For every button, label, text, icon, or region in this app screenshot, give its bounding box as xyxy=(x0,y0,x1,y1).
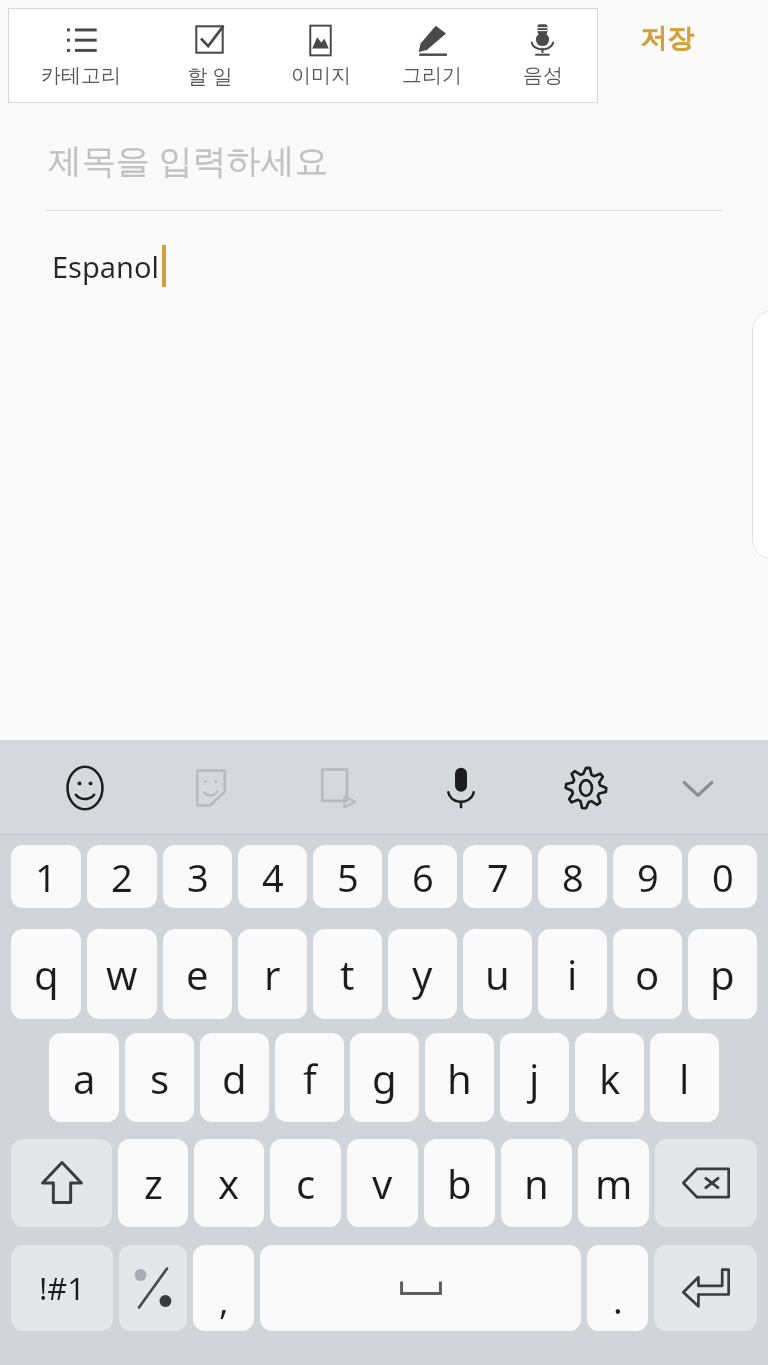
staticText: y xyxy=(412,947,433,1001)
staticText: r xyxy=(264,947,281,1001)
button[interactable]: 6 xyxy=(388,845,457,908)
staticText: 할 일 xyxy=(187,62,233,89)
button[interactable]: o xyxy=(613,929,682,1019)
staticText: h xyxy=(447,1051,472,1105)
staticText: l xyxy=(679,1051,690,1105)
staticText: 5 xyxy=(337,851,359,903)
staticText: 이미지 xyxy=(291,63,351,88)
staticText: z xyxy=(144,1156,163,1210)
button[interactable]: t xyxy=(313,929,382,1019)
button[interactable]: 저장 xyxy=(626,12,708,66)
staticText: o xyxy=(635,947,660,1001)
button[interactable]: g xyxy=(350,1033,419,1122)
button[interactable]: 할 일 xyxy=(154,8,265,103)
staticText: 그리기 xyxy=(402,63,462,88)
staticText: . xyxy=(613,1276,623,1325)
staticText: 7 xyxy=(487,851,509,903)
button[interactable]: Korean English toggle xyxy=(119,1245,187,1331)
staticText: , xyxy=(219,1276,229,1325)
staticText: m xyxy=(595,1156,633,1210)
staticText: g xyxy=(372,1051,397,1105)
staticText: 제목을 입력하세요 xyxy=(48,137,329,183)
button[interactable]: 7 xyxy=(463,845,532,908)
button[interactable]: h xyxy=(425,1033,494,1122)
button[interactable]: l xyxy=(650,1033,719,1122)
button[interactable]: j xyxy=(500,1033,569,1122)
staticText: b xyxy=(447,1156,472,1210)
button[interactable]: d xyxy=(200,1033,269,1122)
button[interactable]: f xyxy=(275,1033,344,1122)
button[interactable]: . xyxy=(587,1245,648,1331)
staticText: 3 xyxy=(187,851,209,903)
staticText: x xyxy=(218,1156,240,1210)
staticText: e xyxy=(186,947,209,1001)
button[interactable]: Backspace xyxy=(655,1139,757,1227)
button[interactable]: 0 xyxy=(688,845,757,908)
button[interactable]: r xyxy=(238,929,307,1019)
staticText: !#1 xyxy=(39,1267,86,1309)
button[interactable]: 카테고리 xyxy=(8,8,154,103)
button[interactable]: i xyxy=(538,929,607,1019)
staticText: 9 xyxy=(637,851,659,903)
button[interactable]: v xyxy=(347,1139,418,1227)
button[interactable]: m xyxy=(578,1139,649,1227)
staticText: u xyxy=(485,947,510,1001)
button[interactable]: Stickers xyxy=(148,740,273,835)
staticText: 6 xyxy=(412,851,434,903)
staticText: 카테고리 xyxy=(41,63,121,88)
button[interactable]: 5 xyxy=(313,845,382,908)
button[interactable]: z xyxy=(118,1139,188,1227)
button[interactable]: !#1 xyxy=(11,1245,113,1331)
button[interactable]: e xyxy=(163,929,232,1019)
button[interactable]: u xyxy=(463,929,532,1019)
button[interactable]: Hide keyboard xyxy=(648,740,748,835)
button[interactable]: 9 xyxy=(613,845,682,908)
button[interactable]: 4 xyxy=(238,845,307,908)
button[interactable]: q xyxy=(11,929,81,1019)
staticText: t xyxy=(340,947,355,1001)
staticText: d xyxy=(222,1051,247,1105)
button[interactable]: p xyxy=(688,929,757,1019)
button[interactable]: b xyxy=(424,1139,495,1227)
button[interactable]: Voice input xyxy=(398,740,523,835)
staticText: c xyxy=(296,1156,316,1210)
button[interactable]: s xyxy=(125,1033,194,1122)
staticText: f xyxy=(303,1051,317,1105)
button[interactable]: 1 xyxy=(11,845,81,908)
button[interactable]: Enter xyxy=(654,1245,757,1331)
staticText: 2 xyxy=(111,851,133,903)
button[interactable]: n xyxy=(501,1139,572,1227)
button[interactable]: x xyxy=(194,1139,264,1227)
button[interactable]: Espanol xyxy=(0,211,768,321)
button[interactable]: 2 xyxy=(87,845,157,908)
staticText: i xyxy=(567,947,578,1001)
button[interactable]: k xyxy=(575,1033,644,1122)
button[interactable]: Emoji xyxy=(22,740,148,835)
staticText: 1 xyxy=(35,851,57,903)
staticText: s xyxy=(150,1051,170,1105)
staticText: k xyxy=(599,1051,621,1105)
button[interactable]: c xyxy=(270,1139,341,1227)
button[interactable]: 이미지 xyxy=(265,8,376,103)
staticText: 4 xyxy=(262,851,284,903)
button[interactable]: GIF xyxy=(273,740,398,835)
button[interactable]: 3 xyxy=(163,845,232,908)
staticText: n xyxy=(524,1156,549,1210)
staticText: 음성 xyxy=(523,63,563,88)
button[interactable]: y xyxy=(388,929,457,1019)
button[interactable]: Space xyxy=(260,1245,581,1331)
button[interactable]: Keyboard settings xyxy=(523,740,648,835)
button[interactable]: Shift xyxy=(11,1139,112,1227)
button[interactable]: 음성 xyxy=(487,8,598,103)
staticText: w xyxy=(106,947,138,1001)
button[interactable]: 그리기 xyxy=(376,8,487,103)
staticText: a xyxy=(73,1051,96,1105)
button[interactable]: 제목을 입력하세요 xyxy=(0,110,768,210)
button[interactable]: , xyxy=(193,1245,254,1331)
button[interactable]: 8 xyxy=(538,845,607,908)
staticText: p xyxy=(710,947,735,1001)
button[interactable]: a xyxy=(49,1033,119,1122)
staticText: q xyxy=(34,947,59,1001)
button[interactable]: w xyxy=(87,929,157,1019)
staticText: 저장 xyxy=(640,22,694,56)
